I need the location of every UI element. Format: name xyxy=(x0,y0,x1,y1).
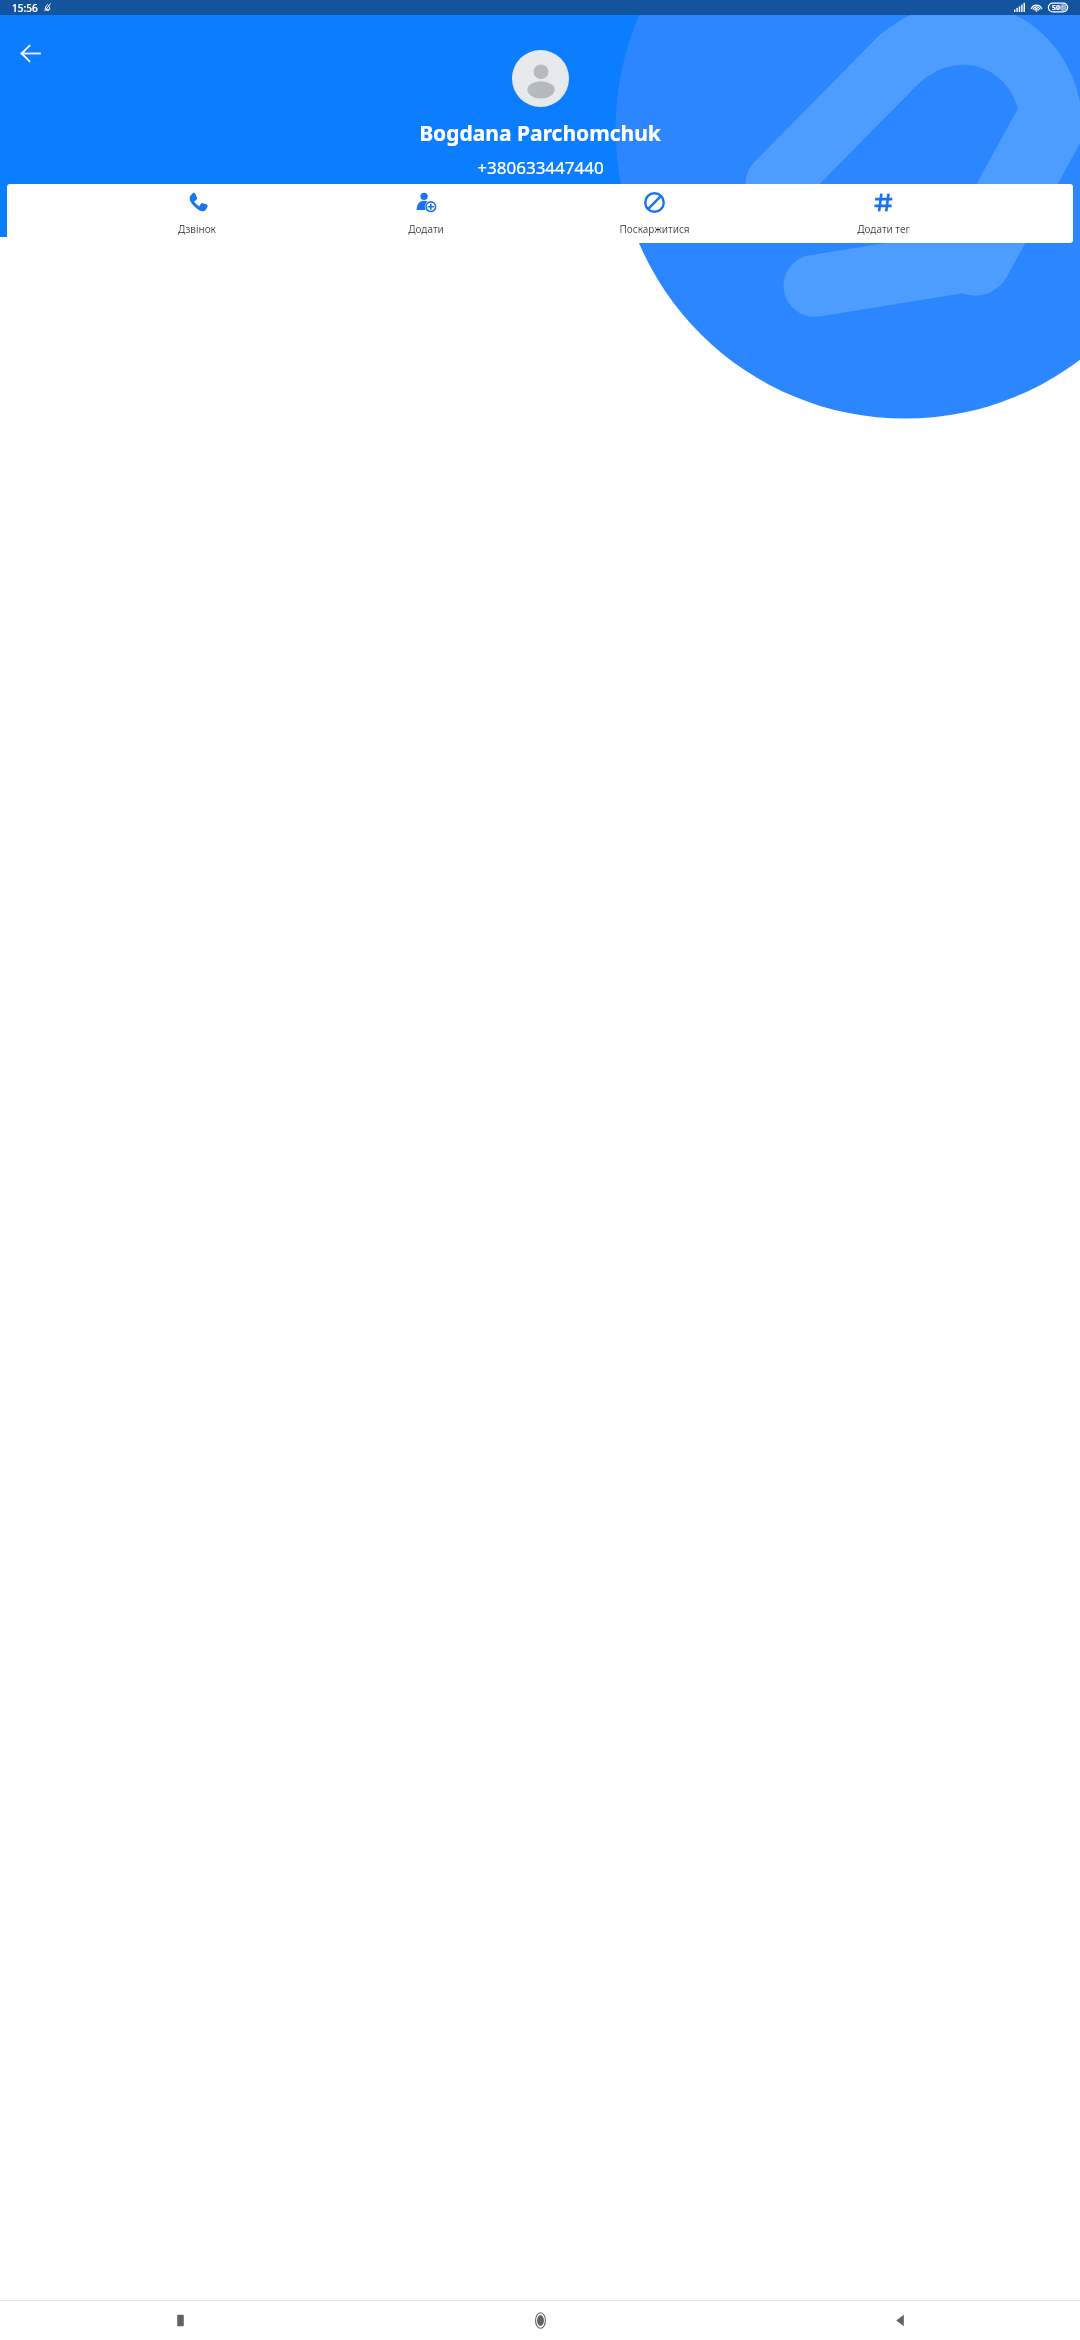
staticText: Додати xyxy=(408,222,444,236)
button[interactable]: Back xyxy=(720,2301,1080,2340)
staticText: 15:56 xyxy=(12,1,38,15)
staticText: Дзвінок xyxy=(178,222,216,236)
button[interactable]: Поскаржитися xyxy=(615,186,693,242)
staticText: Bogdana Parchomchuk xyxy=(419,119,661,148)
button[interactable]: Home xyxy=(360,2301,720,2340)
button[interactable]: Додати тег xyxy=(844,186,922,242)
staticText: Поскаржитися xyxy=(619,222,690,236)
staticText: +380633447440 xyxy=(477,156,604,179)
staticText: Додати тег xyxy=(857,222,910,236)
button[interactable]: Back xyxy=(8,31,52,75)
staticText: 50 xyxy=(1052,3,1061,13)
button[interactable]: Recent apps xyxy=(0,2301,360,2340)
button[interactable]: Дзвінок xyxy=(158,186,236,242)
button[interactable]: Додати xyxy=(387,186,465,242)
